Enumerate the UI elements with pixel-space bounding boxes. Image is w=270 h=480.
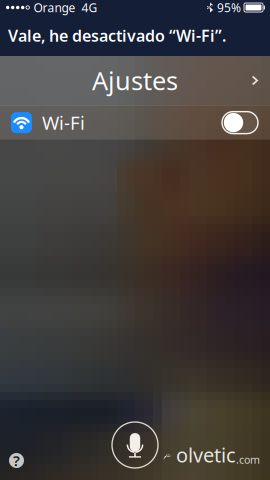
button[interactable]: Help <box>9 453 24 468</box>
staticText: .com <box>236 453 260 467</box>
staticText: Vale, he desactivado “Wi-Fi”. <box>8 25 226 46</box>
button[interactable]: Ajustes <box>0 56 270 105</box>
staticText: Wi-Fi <box>42 110 85 135</box>
staticText: Ajustes <box>92 64 178 97</box>
button[interactable]: Speak to Siri <box>112 422 158 468</box>
staticText: Orange <box>33 0 75 15</box>
button[interactable]: Wi-Fi <box>0 106 270 140</box>
staticText: 95% <box>217 0 241 15</box>
staticText: ? <box>13 451 20 470</box>
staticText: 4G <box>81 0 97 15</box>
staticText: olvetic <box>176 441 236 468</box>
